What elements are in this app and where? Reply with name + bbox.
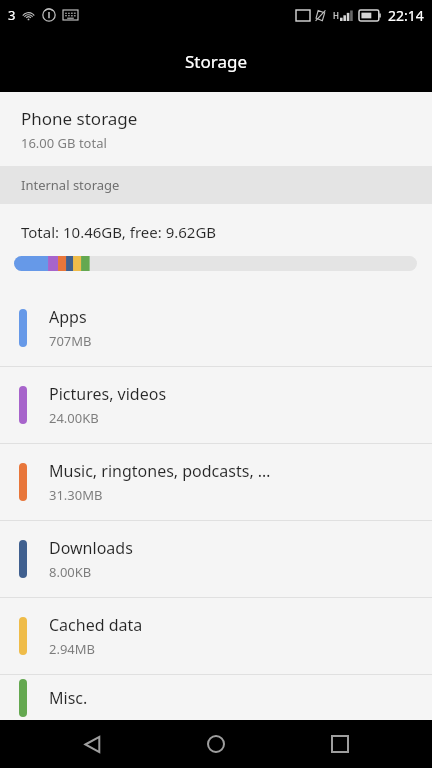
staticText: 22:14 (388, 6, 424, 25)
button[interactable]: Misc. (0, 675, 432, 720)
staticText: 16.00 GB total (21, 134, 107, 152)
button[interactable]: Music, ringtones, podcasts, … (0, 444, 432, 520)
staticText: H (333, 10, 339, 21)
staticText: Misc. (49, 687, 88, 709)
button[interactable]: Downloads (0, 521, 432, 597)
staticText: Internal storage (21, 176, 120, 194)
staticText: Cached data (49, 614, 143, 636)
staticText: Total: 10.46GB, free: 9.62GB (21, 222, 217, 242)
button[interactable]: Pictures, videos (0, 367, 432, 443)
button[interactable]: Home (184, 720, 248, 768)
button[interactable]: Cached data (0, 598, 432, 674)
staticText: Apps (49, 306, 87, 328)
staticText: 31.30MB (49, 486, 103, 504)
button[interactable]: Phone storage (0, 92, 432, 166)
button[interactable]: Apps (0, 290, 432, 366)
staticText: 2.94MB (49, 640, 96, 658)
staticText: 3 (8, 6, 16, 24)
staticText: 707MB (49, 332, 92, 350)
button[interactable]: Recent apps (308, 720, 372, 768)
staticText: Music, ringtones, podcasts, … (49, 460, 271, 482)
staticText: Storage (185, 50, 248, 73)
button[interactable]: Back (60, 720, 124, 768)
staticText: Downloads (49, 537, 133, 559)
staticText: Pictures, videos (49, 383, 167, 405)
staticText: 8.00KB (49, 563, 92, 581)
staticText: 24.00KB (49, 409, 99, 427)
staticText: Phone storage (21, 107, 138, 130)
